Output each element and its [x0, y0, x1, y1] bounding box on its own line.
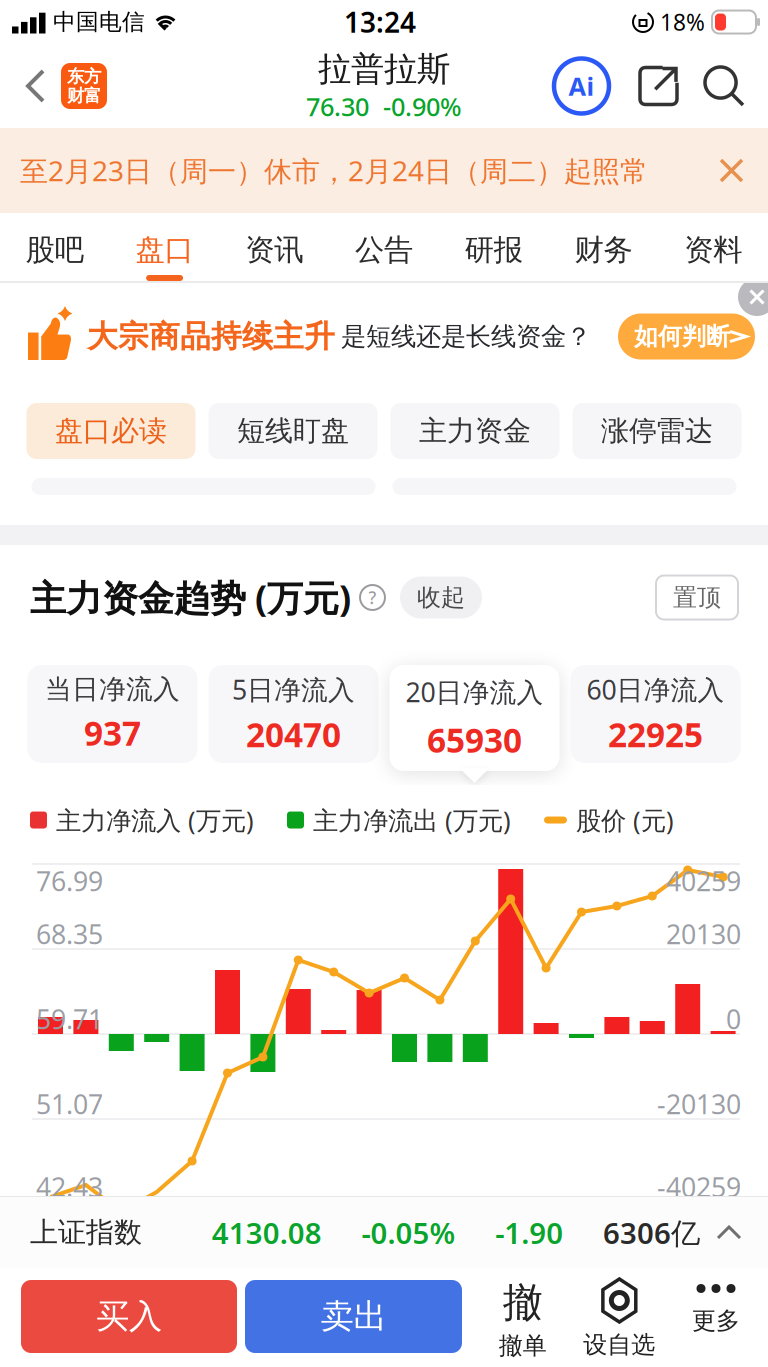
staticText: 59.71 — [36, 1001, 103, 1037]
staticText: 买入 — [96, 1296, 162, 1337]
staticText: 股吧 — [26, 232, 84, 268]
staticText: 如何判断 — [634, 322, 730, 351]
staticText: 76.99 — [36, 863, 103, 899]
staticText: -1.90 — [495, 1213, 563, 1252]
button[interactable]: 置顶 — [656, 575, 738, 619]
staticText: 大宗商品持续主升 — [87, 318, 335, 355]
staticText: 76.30 -0.90% — [306, 90, 462, 123]
button[interactable]: Share — [609, 65, 679, 106]
staticText: 拉普拉斯 — [318, 49, 450, 90]
staticText: 13:24 — [344, 3, 416, 41]
staticText: 40259 — [666, 863, 741, 899]
staticText: 51.07 — [36, 1086, 103, 1122]
staticText: 60日净流入 — [586, 672, 724, 707]
staticText: 主力净流入 (万元) — [56, 803, 254, 837]
button[interactable]: Search — [679, 65, 768, 107]
staticText: 撤 — [503, 1278, 543, 1327]
staticText: 资料 — [684, 232, 742, 268]
button[interactable]: 主力资金 — [390, 403, 559, 459]
staticText: -0.05% — [361, 1213, 455, 1252]
staticText: 收起 — [417, 583, 465, 612]
staticText: 置顶 — [673, 583, 721, 612]
staticText: 中国电信 — [53, 8, 145, 36]
staticText: 6306亿 — [603, 1213, 700, 1252]
button[interactable]: 卖出 — [245, 1280, 462, 1353]
button[interactable]: 盘口 — [110, 232, 219, 281]
staticText: 20130 — [666, 916, 741, 952]
button[interactable]: 资讯 — [219, 232, 329, 281]
staticText: 68.35 — [36, 916, 103, 952]
button[interactable]: 收起 — [400, 576, 482, 618]
staticText: 设自选 — [583, 1330, 655, 1359]
staticText: 至2月23日（周一）休市，2月24日（周二）起照常 — [20, 152, 648, 189]
staticText: 盘口必读 — [55, 414, 167, 448]
button[interactable]: 5日净流入 — [208, 665, 378, 763]
staticText: 当日净流入 — [45, 673, 180, 706]
button[interactable]: Back — [0, 71, 61, 101]
staticText: 20日净流入 — [405, 674, 543, 710]
staticText: 主力资金 — [419, 414, 531, 448]
staticText: 65930 — [427, 718, 522, 762]
staticText: 22925 — [608, 712, 703, 756]
staticText: 公告 — [355, 232, 413, 268]
staticText: 财务 — [574, 232, 632, 268]
staticText: 股价 (元) — [576, 803, 674, 837]
button[interactable]: 当日净流入 — [27, 665, 197, 763]
button[interactable]: 盘口必读 — [26, 403, 195, 459]
button[interactable]: 设自选 — [583, 1268, 655, 1359]
button[interactable]: Close — [738, 278, 768, 316]
staticText: 卖出 — [320, 1296, 386, 1337]
button[interactable]: 公告 — [329, 232, 439, 281]
staticText: 研报 — [465, 232, 523, 268]
button[interactable]: 买入 — [21, 1280, 237, 1353]
staticText: 937 — [84, 711, 141, 755]
staticText: ? — [368, 586, 376, 609]
staticText: 财富 — [67, 85, 101, 106]
button[interactable]: 东方财富 — [61, 63, 107, 109]
staticText: -20130 — [657, 1086, 741, 1122]
button[interactable]: 股吧 — [0, 232, 110, 281]
staticText: 主力资金趋势 (万元) — [30, 574, 351, 621]
button[interactable]: 撤 — [499, 1268, 547, 1361]
button[interactable]: 财务 — [549, 232, 658, 281]
staticText: Ai — [568, 69, 594, 103]
staticText: 短线盯盘 — [237, 414, 349, 448]
button[interactable]: 研报 — [439, 232, 549, 281]
staticText: 涨停雷达 — [601, 414, 713, 448]
button[interactable]: Close — [715, 160, 742, 181]
button[interactable]: Ai 助手 — [554, 58, 609, 113]
staticText: 5日净流入 — [232, 672, 355, 707]
button[interactable]: 20日净流入 — [389, 665, 559, 771]
button[interactable]: 上证指数 — [0, 1196, 768, 1268]
button[interactable]: 资料 — [658, 232, 768, 281]
staticText: 主力净流出 (万元) — [313, 803, 511, 837]
button[interactable]: 如何判断 — [618, 313, 755, 359]
staticText: 是短线还是长线资金？ — [341, 321, 591, 352]
button[interactable]: 更多 — [692, 1268, 740, 1335]
staticText: 4130.08 — [212, 1213, 322, 1252]
staticText: 42.43 — [36, 1169, 103, 1205]
staticText: -40259 — [657, 1169, 741, 1205]
staticText: 上证指数 — [30, 1215, 142, 1250]
staticText: 盘口 — [136, 232, 194, 268]
staticText: 东方 — [67, 66, 101, 87]
button[interactable]: 涨停雷达 — [572, 403, 741, 459]
staticText: 撤单 — [499, 1331, 547, 1361]
staticText: 0 — [726, 1001, 741, 1037]
staticText: 20470 — [246, 712, 341, 756]
staticText: 资讯 — [245, 232, 303, 268]
staticText: 更多 — [692, 1306, 740, 1335]
staticText: 18% — [660, 7, 705, 37]
button[interactable]: 短线盯盘 — [208, 403, 377, 459]
button[interactable]: 60日净流入 — [570, 665, 740, 763]
